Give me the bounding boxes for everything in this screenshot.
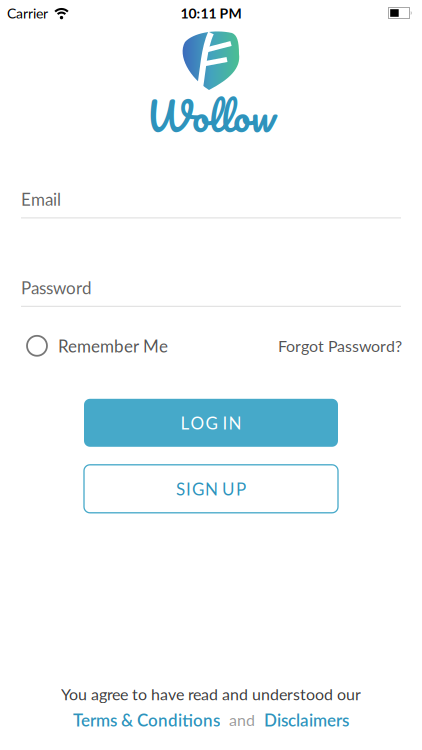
staticText: Email [21, 189, 61, 209]
staticText: Password [21, 277, 92, 298]
staticText: S I G N U P [176, 479, 246, 499]
staticText: Terms & Conditions [73, 710, 220, 730]
button[interactable]: Disclaimers [264, 710, 349, 730]
staticText: Wollow [146, 83, 276, 149]
button[interactable]: L O G I N [84, 399, 338, 447]
staticText: and [229, 710, 255, 729]
staticText: Disclaimers [264, 710, 349, 730]
staticText: You agree to have read and understood ou… [61, 684, 361, 704]
button[interactable]: Remember Me [26, 335, 168, 357]
button[interactable]: S I G N U P [84, 465, 338, 513]
staticText: L O G I N [180, 413, 241, 433]
button[interactable]: Forgot Password? [278, 336, 402, 355]
staticText: Remember Me [58, 336, 168, 356]
button[interactable]: Terms & Conditions [73, 710, 220, 730]
staticText: Forgot Password? [278, 336, 402, 355]
staticText: Carrier [7, 5, 48, 21]
staticText: 10:11 PM [180, 5, 241, 21]
